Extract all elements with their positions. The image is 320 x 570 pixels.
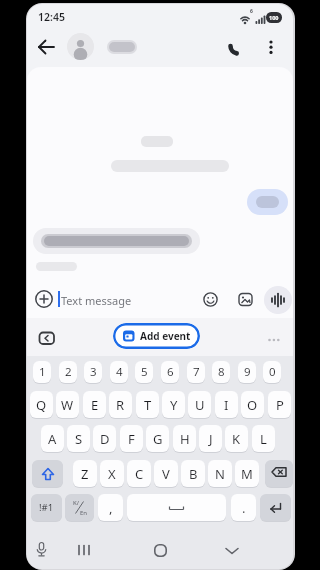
staticText: 12:45	[38, 10, 65, 24]
staticText: A	[48, 430, 57, 448]
staticText: X	[108, 465, 116, 483]
button[interactable]	[265, 35, 277, 59]
staticText: D	[100, 430, 110, 448]
staticText: T	[144, 396, 152, 414]
staticText: L	[260, 430, 267, 448]
staticText: 0	[269, 364, 276, 380]
button[interactable]: D	[93, 425, 116, 452]
staticText: H	[180, 430, 190, 448]
button[interactable]: J	[199, 425, 222, 452]
button[interactable]: L	[252, 425, 275, 452]
button[interactable]	[127, 494, 226, 521]
button[interactable]	[77, 544, 93, 556]
staticText: .	[242, 499, 246, 517]
button[interactable]	[260, 494, 291, 521]
button[interactable]: Y	[162, 391, 185, 418]
button[interactable]: I	[215, 391, 238, 418]
button[interactable]: 1	[33, 361, 51, 383]
button[interactable]: 4	[110, 361, 128, 383]
button[interactable]: H	[173, 425, 196, 452]
button[interactable]: R	[109, 391, 132, 418]
staticText: G	[153, 430, 163, 448]
button[interactable]	[35, 35, 59, 59]
staticText: W	[61, 396, 74, 414]
button[interactable]: Add event	[113, 323, 200, 349]
button[interactable]	[227, 35, 251, 59]
staticText: 9	[244, 364, 251, 380]
button[interactable]: 3	[84, 361, 102, 383]
button[interactable]: 0	[263, 361, 281, 383]
button[interactable]: P	[268, 391, 291, 418]
button[interactable]: 7	[187, 361, 205, 383]
button[interactable]: K/	[65, 494, 94, 521]
staticText: C	[135, 465, 144, 483]
staticText: N	[215, 465, 225, 483]
staticText: B	[189, 465, 198, 483]
button[interactable]: Text message	[61, 293, 132, 308]
staticText: 7	[193, 364, 200, 380]
button[interactable]: A	[41, 425, 64, 452]
staticText: Q	[36, 396, 47, 414]
button[interactable]: V	[154, 460, 178, 487]
staticText: K	[232, 430, 241, 448]
staticText: O	[247, 396, 258, 414]
button[interactable]	[34, 289, 54, 309]
staticText: 5	[141, 364, 148, 380]
staticText: ,	[109, 499, 113, 517]
button[interactable]: Z	[73, 460, 97, 487]
staticText: !#1	[39, 501, 54, 514]
staticText: 6	[167, 364, 174, 380]
button[interactable]: N	[208, 460, 232, 487]
button[interactable]: M	[235, 460, 259, 487]
staticText: F	[128, 430, 135, 448]
button[interactable]: X	[100, 460, 124, 487]
button[interactable]: 2	[59, 361, 77, 383]
button[interactable]: B	[181, 460, 205, 487]
button[interactable]: U	[188, 391, 211, 418]
button[interactable]	[34, 541, 49, 559]
staticText: J	[209, 430, 213, 448]
button[interactable]	[38, 331, 56, 346]
button[interactable]: 8	[212, 361, 230, 383]
staticText: Y	[170, 396, 178, 414]
button[interactable]	[264, 286, 292, 314]
staticText: 100	[269, 14, 279, 21]
staticText: R	[116, 396, 125, 414]
staticText: 4	[116, 364, 123, 380]
staticText: Z	[81, 465, 89, 483]
staticText: U	[195, 396, 205, 414]
button[interactable]	[267, 334, 283, 346]
button[interactable]: .	[231, 494, 256, 521]
button[interactable]: S	[67, 425, 90, 452]
button[interactable]	[32, 460, 63, 487]
button[interactable]	[203, 292, 218, 307]
staticText: Add event	[140, 329, 191, 343]
staticText: P	[276, 396, 284, 414]
button[interactable]: !#1	[31, 494, 62, 521]
button[interactable]	[238, 292, 253, 307]
button[interactable]: ,	[98, 494, 123, 521]
button[interactable]: E	[83, 391, 106, 418]
staticText: 3	[90, 364, 97, 380]
button[interactable]: 6	[161, 361, 179, 383]
button[interactable]	[265, 460, 293, 487]
button[interactable]: O	[241, 391, 264, 418]
staticText: S	[75, 430, 83, 448]
button[interactable]: G	[146, 425, 169, 452]
button[interactable]: W	[56, 391, 79, 418]
button[interactable]: 5	[135, 361, 153, 383]
staticText: 2	[65, 364, 72, 380]
button[interactable]: F	[120, 425, 143, 452]
button[interactable]	[67, 33, 94, 60]
button[interactable]: C	[127, 460, 151, 487]
button[interactable]: T	[136, 391, 159, 418]
button[interactable]: Q	[30, 391, 53, 418]
button[interactable]	[224, 546, 240, 556]
button[interactable]: 9	[238, 361, 256, 383]
staticText: 1	[39, 364, 46, 380]
button[interactable]	[154, 544, 167, 557]
staticText: E	[91, 396, 99, 414]
staticText: M	[241, 465, 253, 483]
button[interactable]: K	[225, 425, 248, 452]
staticText: I	[224, 396, 229, 414]
